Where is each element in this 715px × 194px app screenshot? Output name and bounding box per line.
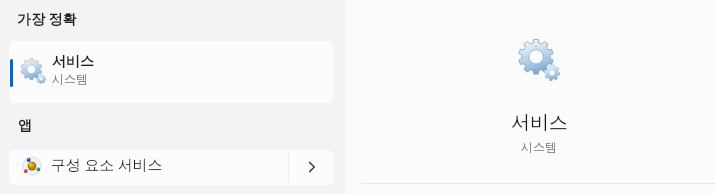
button[interactable]: 구성 요소 서비스 [9, 150, 334, 185]
staticText: 서비스 [511, 111, 568, 135]
staticText: 서비스 [52, 53, 94, 71]
staticText: 시스템 [52, 71, 88, 86]
button[interactable]: 서비스 [9, 41, 334, 103]
staticText: 가장 정확 [17, 9, 77, 28]
button[interactable]: More options [288, 150, 334, 185]
staticText: 시스템 [521, 139, 557, 154]
staticText: 구성 요소 서비스 [51, 154, 163, 174]
staticText: 앱 [18, 117, 32, 135]
